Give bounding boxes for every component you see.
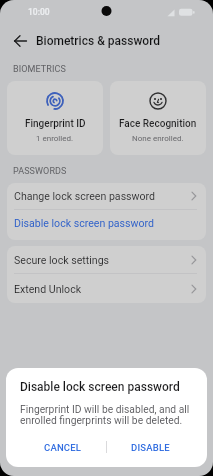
staticText: Fingerprint ID (25, 118, 86, 130)
staticText: DISABLE (131, 442, 170, 453)
button[interactable]: CANCEL (19, 434, 106, 460)
button[interactable]: Change lock screen password (7, 183, 206, 209)
staticText: Secure lock settings (14, 254, 110, 266)
staticText: Face Recognition (119, 118, 197, 130)
button[interactable] (14, 35, 27, 47)
staticText: 1 enrolled. (36, 134, 74, 143)
staticText: Change lock screen password (14, 190, 156, 202)
button[interactable]: Disable lock screen password (7, 210, 206, 236)
button[interactable]: DISABLE (107, 434, 194, 460)
button[interactable]: Extend Unlock (7, 274, 206, 303)
button[interactable]: Face Recognition (110, 81, 206, 155)
staticText: 10:00 (28, 7, 50, 17)
staticText: Disable lock screen password (14, 217, 155, 229)
staticText: None enrolled. (132, 134, 184, 143)
staticText: Disable lock screen password (20, 380, 180, 394)
staticText: PASSWORDS (13, 166, 67, 177)
staticText: Extend Unlock (14, 283, 82, 295)
staticText: Biometrics & password (36, 34, 161, 48)
staticText: CANCEL (44, 442, 82, 453)
staticText: BIOMETRICS (13, 64, 66, 75)
staticText: Fingerprint ID will be disabled, and all… (20, 403, 190, 427)
button[interactable]: Fingerprint ID (7, 81, 103, 155)
button[interactable]: Secure lock settings (7, 246, 206, 273)
